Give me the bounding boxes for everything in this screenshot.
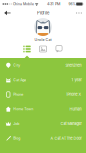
button[interactable]: Back	[0, 8, 22, 18]
button[interactable]: Timeline	[19, 45, 35, 53]
staticText: Home Town	[13, 107, 33, 111]
button[interactable]: Photos	[35, 45, 51, 53]
button[interactable]: Cat Age	[0, 73, 86, 87]
staticText: 4:31 PM	[47, 2, 60, 6]
staticText: iPhone X	[66, 92, 81, 97]
staticText: Cat Manager	[60, 121, 81, 126]
staticText: A Cat At The Door	[50, 136, 81, 140]
staticText: Human	[69, 107, 81, 111]
staticText: Job	[13, 122, 19, 126]
button[interactable]: Home Town	[0, 102, 86, 116]
staticText: 1 year	[71, 78, 81, 82]
staticText: Uncle Cat	[34, 37, 51, 42]
button[interactable]: Messages	[51, 45, 67, 53]
button[interactable]: City	[0, 58, 86, 73]
staticText: Profile	[37, 10, 49, 15]
button[interactable]: Phone	[0, 87, 86, 102]
staticText: City	[13, 63, 20, 67]
button[interactable]: Job	[0, 116, 86, 131]
staticText: Phone	[13, 92, 23, 97]
button[interactable]: More options	[64, 8, 86, 18]
staticText: Cat Age	[13, 78, 26, 82]
staticText: Shenzhen	[65, 63, 81, 67]
button[interactable]: Blog	[0, 131, 86, 146]
staticText: China Mobile	[13, 2, 34, 6]
staticText: Blog	[13, 136, 20, 140]
staticText: 96%	[68, 2, 75, 6]
